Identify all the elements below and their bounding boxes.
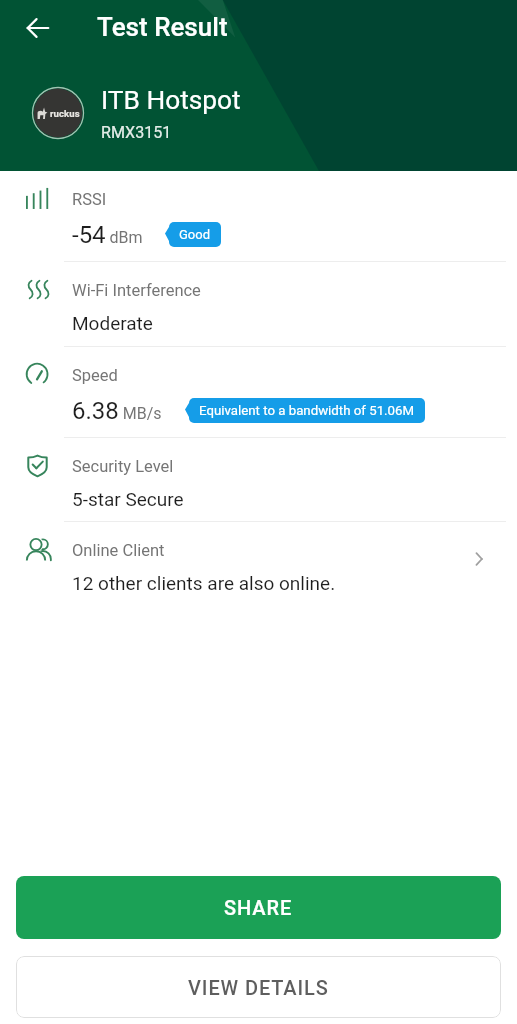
button[interactable]: Back [20, 10, 56, 46]
button[interactable]: VIEW DETAILS [16, 956, 501, 1018]
button[interactable]: Speed [0, 347, 517, 438]
staticText: Moderate [72, 312, 153, 334]
staticText: ruckus [50, 108, 80, 119]
staticText: Wi-Fi Interference [72, 281, 201, 300]
staticText: Good [179, 227, 211, 242]
staticText: RMX3151 [101, 123, 172, 142]
button[interactable]: Security Level [0, 438, 517, 522]
staticText: RSSI [72, 190, 107, 209]
button[interactable]: Online clients [465, 545, 493, 573]
staticText: VIEW DETAILS [188, 976, 329, 999]
button[interactable]: Wi-Fi Interference [0, 262, 517, 347]
staticText: 12 other clients are also online. [72, 572, 336, 594]
staticText: Speed [72, 366, 118, 385]
button[interactable]: RSSI [0, 171, 517, 262]
staticText: -54 dBm [72, 221, 143, 249]
staticText: Security Level [72, 457, 174, 476]
staticText: Equivalent to a bandwidth of 51.06M [199, 403, 415, 419]
staticText: Online Client [72, 541, 165, 560]
staticText: SHARE [224, 896, 293, 919]
button[interactable]: Online Client [0, 522, 517, 613]
staticText: 5-star Secure [72, 488, 184, 510]
staticText: ITB Hotspot [101, 85, 241, 116]
staticText: 6.38 MB/s [72, 397, 162, 425]
button[interactable]: SHARE [16, 876, 501, 939]
staticText: Test Result [97, 12, 228, 42]
